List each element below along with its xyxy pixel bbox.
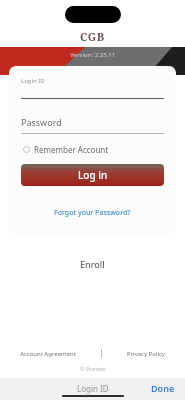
- button[interactable]: Done: [151, 382, 175, 394]
- staticText: Remember Account: [34, 144, 109, 155]
- staticText: Version: 2.25.11: [70, 51, 116, 59]
- staticText: Login ID: [21, 77, 45, 85]
- staticText: Login ID: [77, 383, 109, 394]
- staticText: Log in: [78, 168, 108, 182]
- button[interactable]: Log in: [21, 164, 164, 186]
- staticText: Password: [21, 116, 62, 128]
- button[interactable]: Account Agreement: [20, 350, 76, 358]
- staticText: © Sharetec: [80, 366, 106, 373]
- button[interactable]: Remember Account: [23, 144, 109, 155]
- staticText: CGB: [80, 29, 105, 44]
- button[interactable]: Enroll: [80, 258, 105, 270]
- button[interactable]: Forgot your Password?: [54, 208, 131, 218]
- button[interactable]: Privacy Policy: [127, 350, 165, 358]
